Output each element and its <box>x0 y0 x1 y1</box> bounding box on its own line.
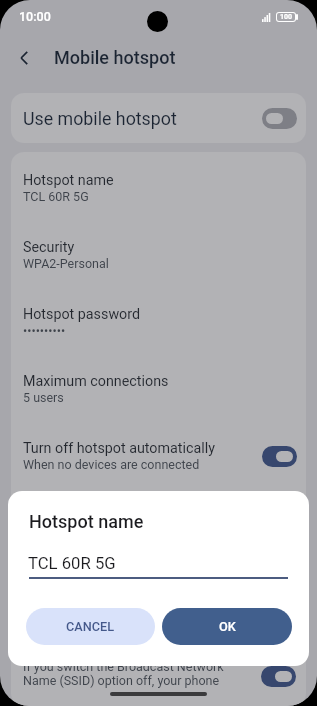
staticText: When no devices are connected <box>23 457 200 472</box>
button[interactable]: Toggle on <box>262 446 297 467</box>
button[interactable]: OK <box>162 608 292 645</box>
staticText: CANCEL <box>66 619 115 634</box>
staticText: Use mobile hotspot <box>23 108 177 129</box>
button[interactable]: Back <box>9 43 39 73</box>
staticText: Hotspot password <box>23 306 141 323</box>
staticText: Name (SSID) option off, your phone <box>23 673 220 688</box>
staticText: OK <box>219 619 236 634</box>
staticText: Hotspot name <box>23 172 114 189</box>
button[interactable]: Hotspot password <box>11 306 306 364</box>
staticText: TCL 60R 5G <box>23 189 89 204</box>
staticText: Broadcast network name (SSID) <box>23 507 226 524</box>
button[interactable]: Turn off hotspot automatically <box>11 440 306 498</box>
button[interactable]: Broadcast network name (SSID) <box>11 507 306 706</box>
staticText: •••••••••• <box>23 323 66 338</box>
staticText: 10:00 <box>19 9 51 24</box>
button[interactable]: Toggle off <box>262 108 297 129</box>
staticText: Maximum connections <box>23 373 169 390</box>
button[interactable]: Security <box>11 239 306 297</box>
staticText: Turn off hotspot automatically <box>23 440 215 457</box>
button[interactable]: Toggle on <box>261 666 296 687</box>
button[interactable]: CANCEL <box>26 608 155 645</box>
button[interactable]: Hotspot name <box>11 172 306 230</box>
staticText: If you switch the Broadcast Network <box>23 659 224 674</box>
staticText: Security <box>23 239 75 256</box>
button[interactable]: Maximum connections <box>11 373 306 431</box>
staticText: WPA2-Personal <box>23 256 109 271</box>
staticText: 100 <box>280 13 293 21</box>
staticText: Hotspot name <box>29 511 144 532</box>
button[interactable]: Use mobile hotspot <box>11 93 306 143</box>
staticText: TCL 60R 5G <box>28 554 116 574</box>
staticText: 5 users <box>23 390 64 405</box>
staticText: Mobile hotspot <box>54 47 176 68</box>
